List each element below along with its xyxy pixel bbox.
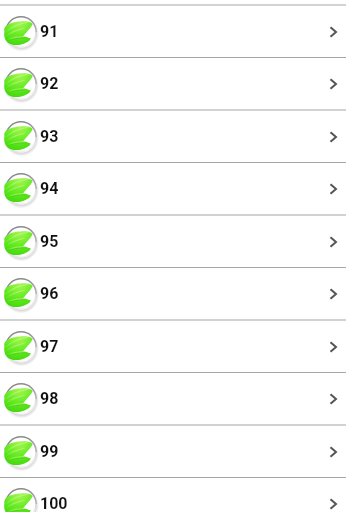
staticText: 95 <box>40 232 59 251</box>
staticText: 92 <box>40 74 59 93</box>
staticText: 93 <box>40 127 59 146</box>
button[interactable]: 99 <box>0 425 346 478</box>
staticText: 96 <box>40 284 59 303</box>
staticText: 98 <box>40 389 59 408</box>
button[interactable]: 92 <box>0 57 346 110</box>
staticText: 97 <box>40 337 59 356</box>
staticText: 91 <box>40 22 59 41</box>
staticText: 94 <box>40 179 59 198</box>
button[interactable]: 94 <box>0 162 346 215</box>
button[interactable]: 96 <box>0 267 346 320</box>
button[interactable]: 97 <box>0 320 346 373</box>
button[interactable]: 93 <box>0 110 346 163</box>
button[interactable]: 98 <box>0 372 346 425</box>
button[interactable]: 100 <box>0 477 346 512</box>
staticText: 99 <box>40 442 59 461</box>
button[interactable]: 91 <box>0 5 346 58</box>
staticText: 100 <box>40 494 68 512</box>
button[interactable]: 95 <box>0 215 346 268</box>
